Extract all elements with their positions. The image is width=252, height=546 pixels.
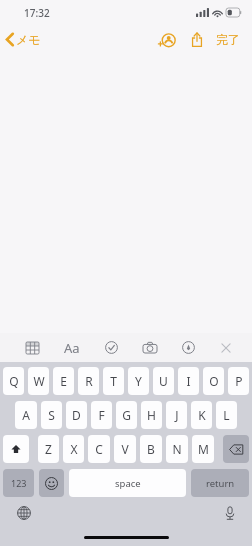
staticText: Q xyxy=(9,373,19,389)
staticText: O xyxy=(209,373,219,389)
button[interactable]: A xyxy=(15,401,37,429)
button[interactable]: Checklist xyxy=(101,337,122,358)
button[interactable]: space xyxy=(69,469,186,497)
button[interactable]: O xyxy=(203,367,224,395)
staticText: space xyxy=(115,477,141,490)
staticText: Z xyxy=(45,441,52,457)
button[interactable]: 完了 xyxy=(212,28,244,51)
button[interactable]: N xyxy=(166,435,188,463)
button[interactable]: H xyxy=(141,401,162,429)
staticText: Aa xyxy=(64,339,80,357)
staticText: K xyxy=(198,407,206,423)
staticText: N xyxy=(172,441,182,457)
button[interactable]: V xyxy=(114,435,136,463)
button[interactable]: Z xyxy=(38,435,59,463)
button[interactable]: R xyxy=(78,367,99,395)
staticText: 123 xyxy=(11,477,27,489)
staticText: L xyxy=(223,407,230,423)
button[interactable]: メモ xyxy=(0,28,49,51)
button[interactable]: J xyxy=(166,401,187,429)
button[interactable]: T xyxy=(103,367,124,395)
button[interactable]: W xyxy=(28,367,49,395)
staticText: D xyxy=(72,407,81,423)
button[interactable]: Q xyxy=(3,367,24,395)
staticText: C xyxy=(95,441,103,457)
button[interactable]: Shift xyxy=(3,435,29,463)
button[interactable]: K xyxy=(191,401,212,429)
staticText: W xyxy=(33,373,45,389)
staticText: S xyxy=(48,407,55,423)
staticText: M xyxy=(198,441,209,457)
staticText: F xyxy=(98,407,105,423)
button[interactable]: S xyxy=(41,401,62,429)
staticText: T xyxy=(110,373,117,389)
staticText: A xyxy=(22,407,30,423)
staticText: return xyxy=(206,477,235,490)
button[interactable]: Table xyxy=(22,338,43,358)
button[interactable]: U xyxy=(153,367,174,395)
staticText: X xyxy=(70,441,78,457)
button[interactable]: 123 xyxy=(3,469,34,497)
button[interactable]: Share xyxy=(186,27,208,52)
staticText: メモ xyxy=(16,32,41,47)
button[interactable]: Close keyboard xyxy=(216,338,236,358)
button[interactable]: F xyxy=(91,401,112,429)
staticText: H xyxy=(147,407,156,423)
staticText: G xyxy=(122,407,131,423)
button[interactable]: L xyxy=(216,401,237,429)
button[interactable]: Emoji xyxy=(39,469,64,497)
staticText: I xyxy=(186,373,191,389)
button[interactable]: D xyxy=(66,401,87,429)
staticText: V xyxy=(121,441,129,457)
button[interactable]: C xyxy=(88,435,110,463)
button[interactable]: Format xyxy=(60,335,84,361)
button[interactable]: Backspace xyxy=(223,435,249,463)
staticText: P xyxy=(235,373,243,389)
staticText: B xyxy=(147,441,155,457)
button[interactable]: M xyxy=(192,435,214,463)
button[interactable]: E xyxy=(53,367,74,395)
staticText: U xyxy=(159,373,168,389)
staticText: Y xyxy=(135,373,142,389)
button[interactable]: Y xyxy=(128,367,149,395)
staticText: 完了 xyxy=(216,32,240,47)
button[interactable]: X xyxy=(63,435,84,463)
button[interactable]: P xyxy=(228,367,249,395)
staticText: R xyxy=(85,373,93,389)
button[interactable]: Markup xyxy=(178,337,199,358)
button[interactable]: B xyxy=(140,435,162,463)
button[interactable]: Camera xyxy=(139,338,161,357)
button[interactable]: G xyxy=(116,401,137,429)
button[interactable]: Dictation xyxy=(222,503,238,523)
staticText: J xyxy=(175,407,179,423)
staticText: 17:32 xyxy=(24,6,50,20)
button[interactable]: I xyxy=(178,367,199,395)
staticText: E xyxy=(60,373,67,389)
button[interactable]: Collaborate xyxy=(153,28,180,52)
button[interactable]: Switch keyboard xyxy=(14,503,34,523)
button[interactable]: return xyxy=(191,469,249,497)
